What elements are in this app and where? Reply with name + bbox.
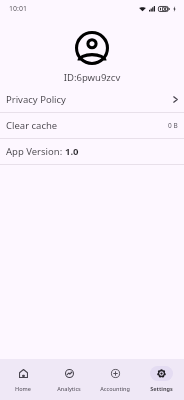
button[interactable]: Analytics: [46, 359, 92, 400]
staticText: ID:6pwu9zcv: [0, 71, 184, 84]
staticText: Clear cache: [6, 119, 58, 132]
staticText: 1.0: [65, 145, 79, 158]
staticText: Settings: [150, 385, 173, 392]
button[interactable]: Privacy Policy: [0, 87, 184, 112]
staticText: 10:01: [9, 4, 27, 14]
button[interactable]: Home: [0, 359, 46, 400]
staticText: App Version:: [6, 145, 65, 158]
staticText: Privacy Policy: [6, 93, 66, 106]
button[interactable]: Clear cache: [0, 113, 184, 138]
staticText: Accounting: [100, 385, 130, 392]
button[interactable]: Accounting: [92, 359, 138, 400]
staticText: 0 B: [168, 121, 178, 130]
staticText: Analytics: [57, 385, 81, 392]
staticText: Home: [15, 385, 31, 392]
other: Open Privacy Policy: [173, 96, 178, 103]
button[interactable]: Settings: [138, 359, 184, 400]
